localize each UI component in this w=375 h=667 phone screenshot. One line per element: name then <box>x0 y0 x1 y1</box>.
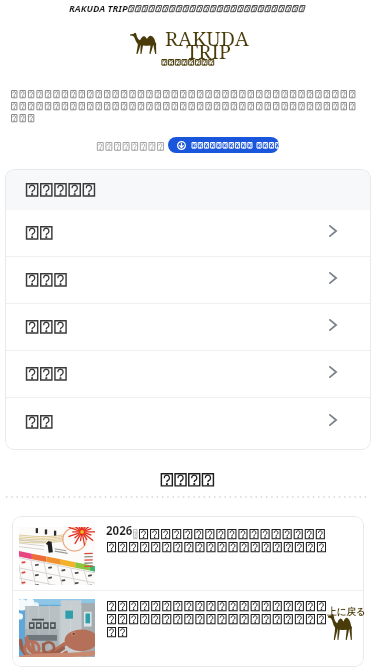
staticText: 2026 <box>106 523 133 539</box>
button[interactable] <box>5 398 371 446</box>
button[interactable] <box>5 210 371 256</box>
button[interactable] <box>168 137 279 153</box>
staticText: RAKUDA TRIP <box>69 2 128 15</box>
button[interactable]: RAKUDA TRIP <box>0 0 375 16</box>
staticText: RAKUDA <box>165 25 249 52</box>
staticText: TRIP <box>186 38 231 65</box>
button[interactable] <box>5 351 371 397</box>
button[interactable]: Back to top <box>322 604 372 644</box>
button[interactable] <box>5 304 371 350</box>
staticText: 上に戻る <box>327 606 366 618</box>
button[interactable] <box>5 257 371 303</box>
button[interactable]: 2026 <box>12 516 364 590</box>
button[interactable]: RAKUDA TRIP home <box>130 27 248 67</box>
button[interactable] <box>12 591 364 667</box>
